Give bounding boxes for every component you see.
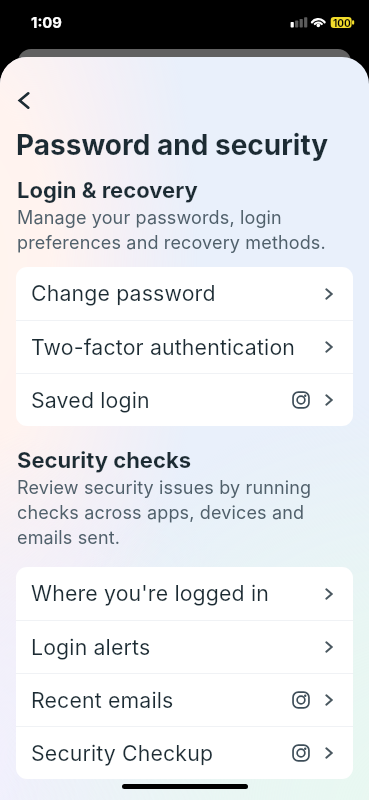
staticText: Two-factor authentication <box>31 335 325 360</box>
button[interactable]: Security Checkup <box>16 727 353 779</box>
button[interactable]: Saved login <box>16 374 353 426</box>
staticText: Review security issues by running checks… <box>17 474 337 549</box>
staticText: Login alerts <box>31 635 325 660</box>
staticText: 1:09 <box>31 14 62 32</box>
button[interactable]: Change password <box>16 267 353 320</box>
staticText: Saved login <box>31 388 292 413</box>
staticText: Security Checkup <box>31 741 292 766</box>
button[interactable]: Where you're logged in <box>16 567 353 620</box>
staticText: Recent emails <box>31 688 292 713</box>
staticText: Where you're logged in <box>31 581 325 606</box>
staticText: Change password <box>31 281 325 306</box>
staticText: Login & recovery <box>17 177 198 203</box>
staticText: Manage your passwords, login preferences… <box>17 204 337 254</box>
button[interactable]: Login alerts <box>16 621 353 673</box>
staticText: Security checks <box>17 447 192 473</box>
staticText: Password and security <box>16 128 329 162</box>
staticText: 100 <box>333 17 351 29</box>
button[interactable]: Recent emails <box>16 674 353 726</box>
button[interactable]: Two-factor authentication <box>16 321 353 373</box>
button[interactable]: Back <box>7 83 41 117</box>
